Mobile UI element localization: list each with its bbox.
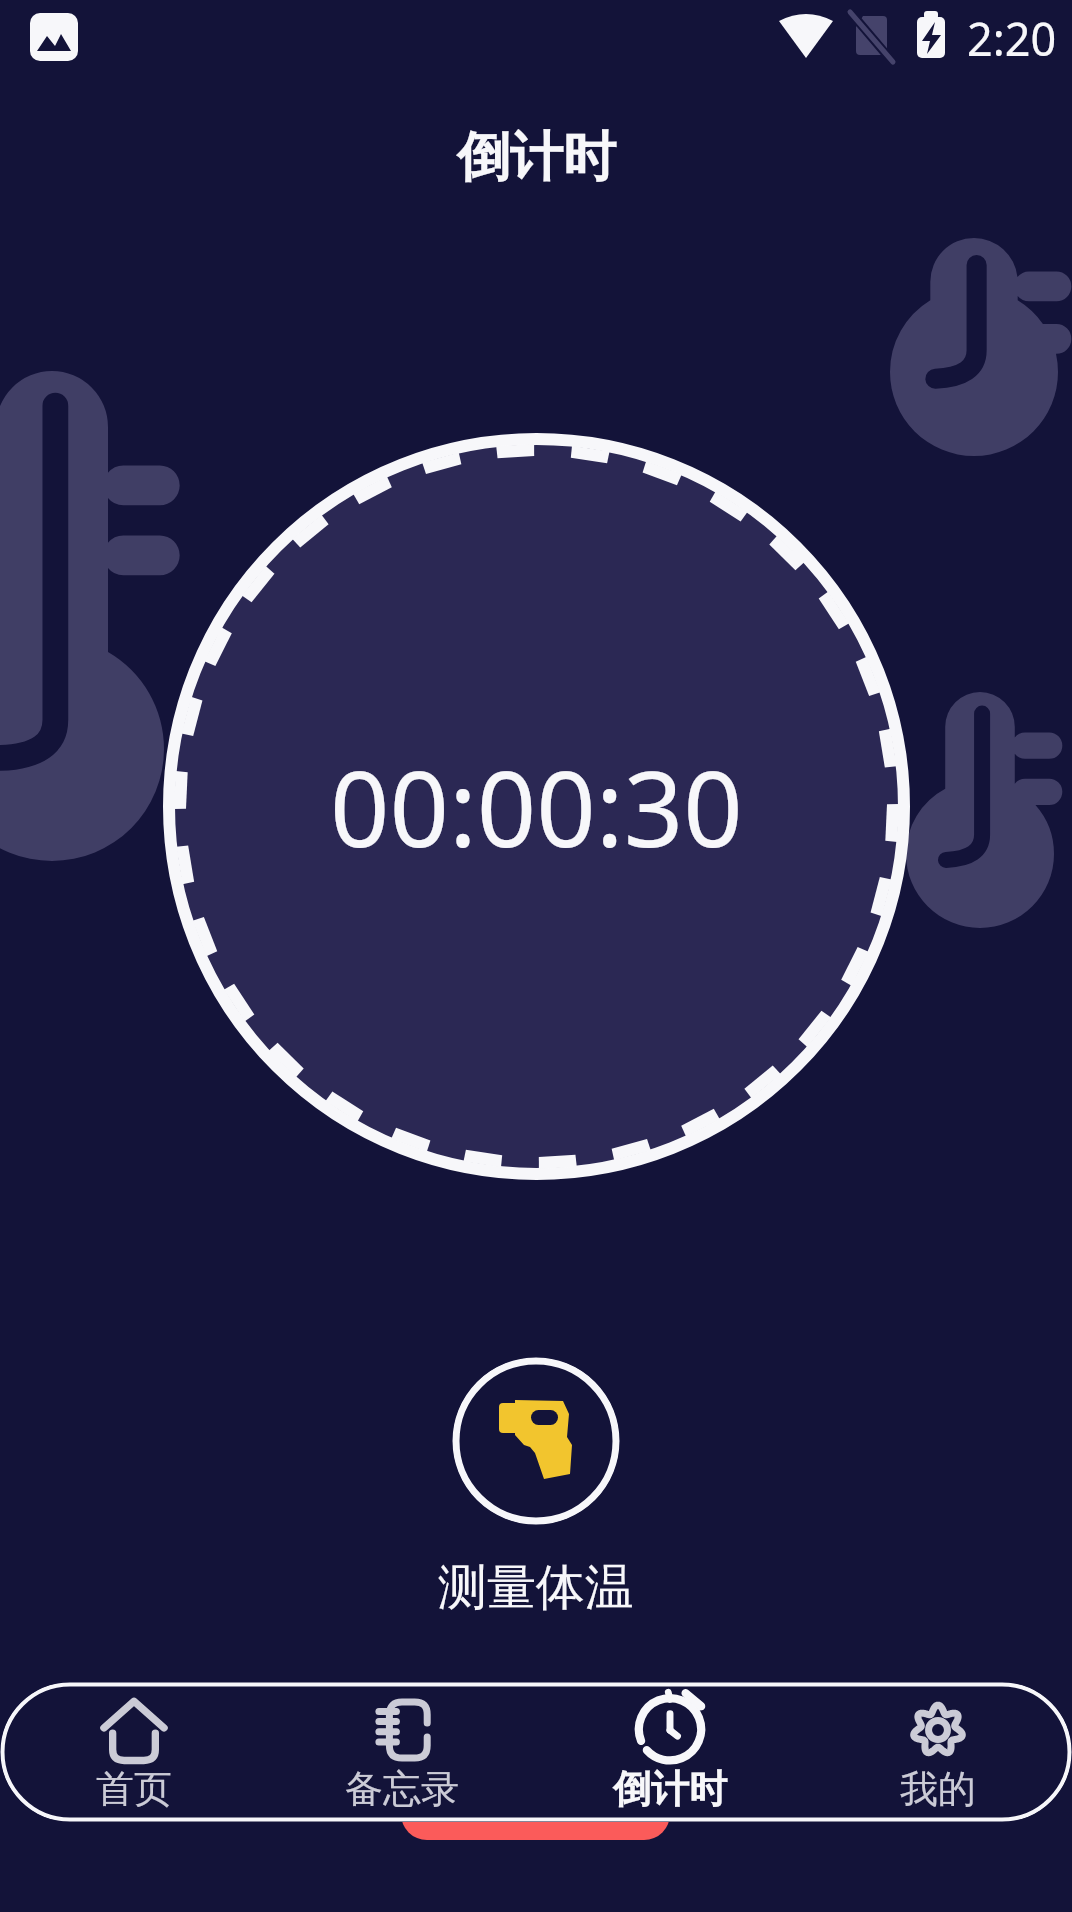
staticText: 2:20 [967,8,1057,69]
button[interactable]: 我的 [804,1682,1072,1822]
button[interactable]: 备忘录 [268,1682,536,1822]
staticText: 我的 [900,1765,976,1813]
staticText: 倒计时 [457,124,616,191]
button[interactable]: 测量体温 [452,1357,620,1525]
staticText: 倒计时 [613,1765,727,1813]
button[interactable]: 首页 [0,1682,268,1822]
staticText: 备忘录 [345,1765,459,1813]
staticText: 00:00:30 [330,736,743,878]
button[interactable]: 倒计时 [536,1682,804,1822]
staticText: 首页 [96,1765,172,1813]
staticText: 测量体温 [438,1557,634,1619]
